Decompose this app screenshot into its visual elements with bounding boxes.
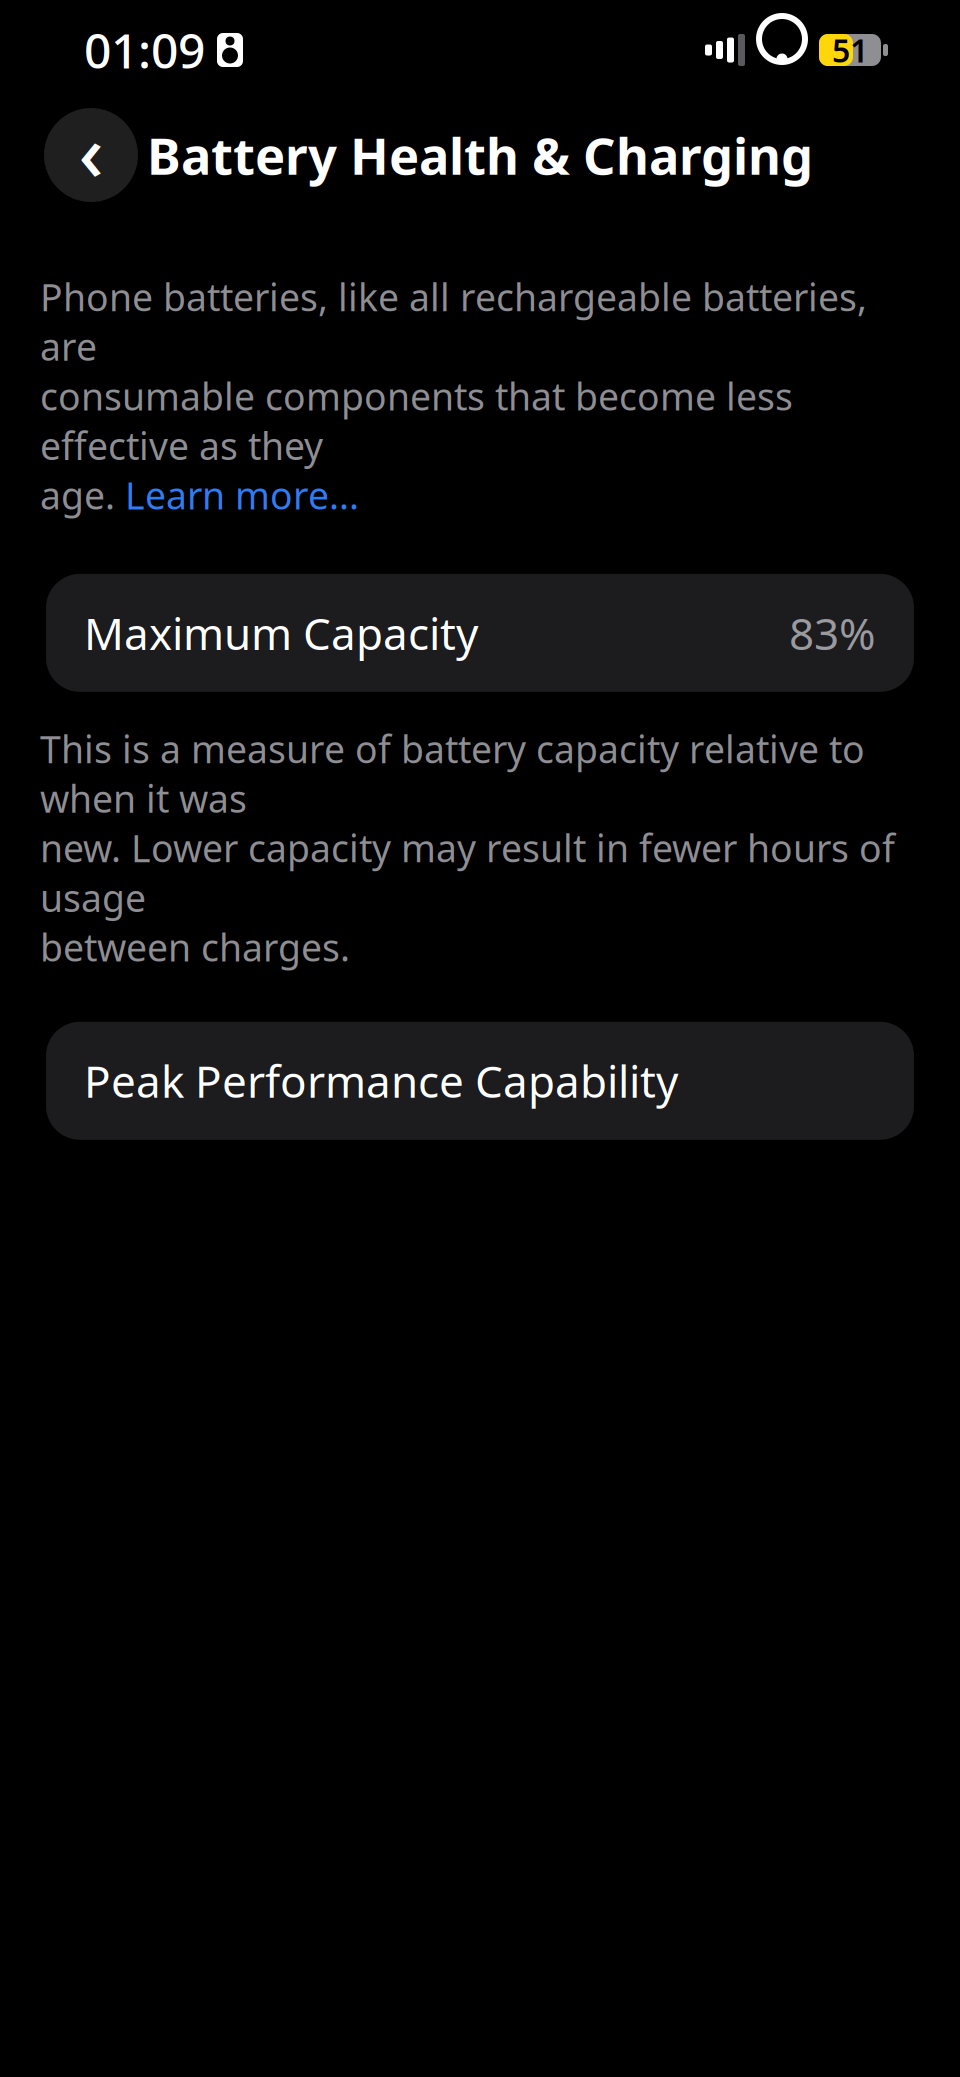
staticText: 01:09 [84, 18, 205, 82]
staticText: new. Lower capacity may result in fewer … [40, 823, 895, 922]
staticText: Battery Health & Charging [147, 121, 813, 189]
button[interactable]: Back [44, 108, 138, 202]
button[interactable]: Peak Performance Capability [46, 1022, 914, 1140]
staticText: 83% [789, 604, 876, 662]
staticText: This is a measure of battery capacity re… [40, 724, 865, 823]
staticText: consumable components that become less e… [40, 371, 793, 470]
staticText: between charges. [40, 922, 350, 972]
staticText: Peak Performance Capability [84, 1052, 678, 1110]
staticText: 51 [832, 29, 868, 71]
staticText: Maximum Capacity [84, 604, 478, 662]
button[interactable]: Maximum Capacity [46, 574, 914, 692]
staticText: ‹ [78, 100, 103, 202]
staticText: Learn more... [125, 470, 359, 520]
staticText: age. [40, 470, 125, 520]
button[interactable]: Learn more... [125, 470, 359, 520]
staticText: Phone batteries, like all rechargeable b… [40, 272, 867, 371]
